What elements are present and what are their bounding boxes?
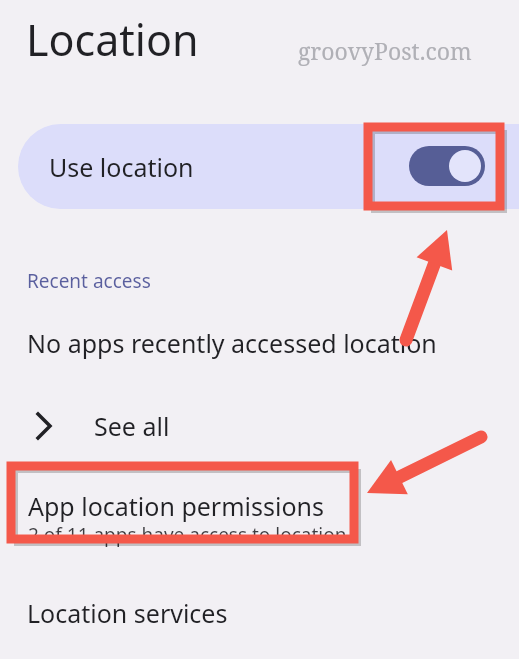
- button[interactable]: Use location toggle, on: [409, 146, 485, 186]
- staticText: No apps recently accessed location: [27, 326, 437, 360]
- staticText: Location: [26, 10, 199, 69]
- staticText: 2 of 11 apps have access to location: [28, 522, 347, 548]
- button[interactable]: App location permissions: [0, 480, 400, 550]
- button[interactable]: Use location: [18, 124, 519, 209]
- button[interactable]: Recent access: [27, 268, 151, 294]
- button[interactable]: See all: [8, 400, 238, 452]
- staticText: App location permissions: [28, 489, 324, 523]
- button[interactable]: Location services: [27, 596, 228, 630]
- staticText: Use location: [49, 150, 194, 184]
- staticText: groovyPost.com: [298, 35, 472, 66]
- staticText: See all: [94, 409, 170, 443]
